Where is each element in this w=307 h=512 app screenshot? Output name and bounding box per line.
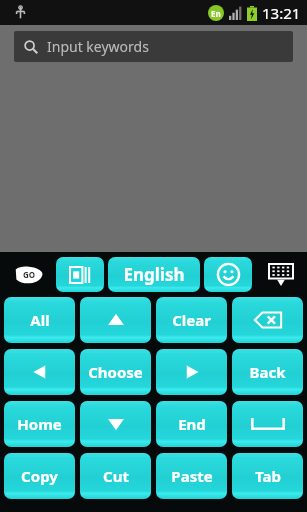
staticText: Copy xyxy=(21,466,58,486)
staticText: End xyxy=(178,414,206,434)
button[interactable]: Clear xyxy=(156,297,227,343)
staticText: All xyxy=(30,310,50,330)
button[interactable]: Cut xyxy=(80,453,151,499)
button[interactable]: Switch layout xyxy=(56,257,104,292)
staticText: Tab xyxy=(255,466,281,486)
staticText: Cut xyxy=(103,466,129,486)
staticText: Back xyxy=(249,362,286,382)
button[interactable]: End xyxy=(156,401,227,447)
button[interactable]: Space xyxy=(232,401,303,447)
staticText: Input keywords xyxy=(47,37,149,56)
button[interactable]: GO Keyboard xyxy=(4,252,56,297)
staticText: Choose xyxy=(88,362,143,382)
button[interactable]: Tab xyxy=(232,453,303,499)
staticText: En xyxy=(211,8,221,19)
button[interactable]: Left xyxy=(4,349,75,395)
button[interactable]: Input keywords xyxy=(14,31,293,62)
button[interactable]: Copy xyxy=(4,453,75,499)
staticText: Paste xyxy=(171,466,213,486)
button[interactable]: Hide keyboard xyxy=(259,252,303,297)
button[interactable]: Paste xyxy=(156,453,227,499)
button[interactable]: All xyxy=(4,297,75,343)
button[interactable]: English xyxy=(108,257,200,292)
button[interactable]: Backspace xyxy=(232,297,303,343)
staticText: English xyxy=(123,263,185,286)
button[interactable]: Home xyxy=(4,401,75,447)
button[interactable]: Up xyxy=(80,297,151,343)
staticText: GO xyxy=(23,269,36,280)
staticText: Home xyxy=(17,414,62,434)
button[interactable]: Down xyxy=(80,401,151,447)
button[interactable]: Back xyxy=(232,349,303,395)
button[interactable]: Emoji xyxy=(204,257,252,292)
staticText: 13:21 xyxy=(262,3,301,23)
staticText: Clear xyxy=(172,310,211,330)
button[interactable]: Right xyxy=(156,349,227,395)
button[interactable]: Choose xyxy=(80,349,151,395)
